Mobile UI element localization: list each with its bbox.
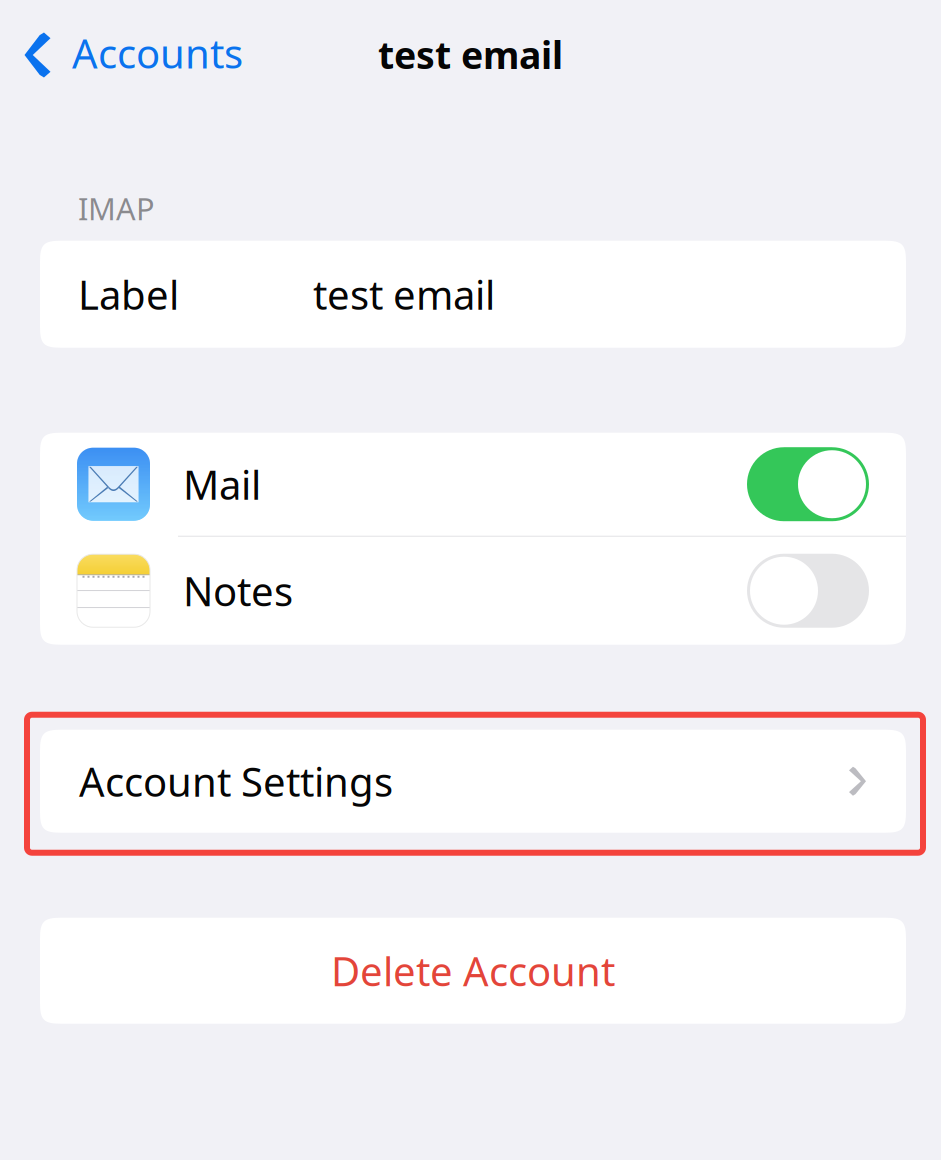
button[interactable]: Accounts: [0, 0, 255, 96]
staticText: Account Settings: [79, 755, 393, 808]
button[interactable]: Account Settings: [40, 730, 906, 833]
button[interactable]: Delete Account: [40, 918, 906, 1024]
staticText: Mail: [183, 458, 261, 511]
button[interactable]: Notes: [40, 537, 906, 645]
staticText: Accounts: [72, 26, 243, 79]
staticText: IMAP: [78, 188, 155, 229]
staticText: Delete Account: [331, 944, 615, 997]
staticText: test email: [313, 268, 495, 321]
staticText: Notes: [183, 564, 293, 617]
staticText: test email: [378, 30, 563, 79]
staticText: Label: [78, 268, 179, 321]
button[interactable]: Label: [40, 241, 906, 348]
button[interactable]: Mail: [40, 433, 906, 536]
